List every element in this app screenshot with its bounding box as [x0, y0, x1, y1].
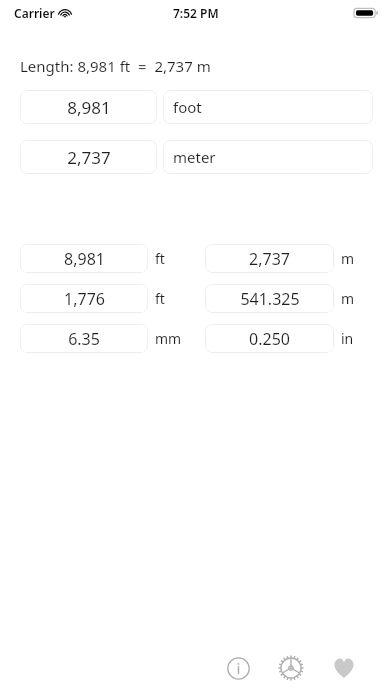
button[interactable]: Info	[216, 646, 260, 690]
staticText: 7:52 PM	[173, 5, 219, 21]
button[interactable]: Favorites	[322, 646, 366, 690]
button[interactable]: Settings	[269, 646, 313, 690]
staticText: m	[341, 289, 355, 308]
staticText: foot	[173, 97, 202, 117]
button[interactable]: foot	[163, 90, 373, 124]
staticText: 2,737	[67, 146, 111, 169]
staticText: 541.325	[240, 288, 300, 310]
button[interactable]: 6.35	[20, 324, 148, 353]
button[interactable]: meter	[163, 140, 373, 174]
staticText: in	[341, 329, 354, 348]
staticText: Length: 8,981 ft = 2,737 m	[20, 56, 211, 76]
button[interactable]: 8,981	[20, 244, 148, 273]
button[interactable]: 2,737	[20, 140, 157, 174]
staticText: 8,981	[67, 96, 111, 119]
button[interactable]: 1,776	[20, 284, 148, 313]
staticText: ft	[155, 289, 165, 308]
staticText: 6.35	[68, 328, 100, 350]
staticText: 0.250	[249, 328, 290, 350]
staticText: 1,776	[64, 288, 105, 310]
staticText: 8,981	[64, 248, 105, 270]
button[interactable]: 8,981	[20, 90, 157, 124]
button[interactable]: 2,737	[205, 244, 334, 273]
button[interactable]: 0.250	[205, 324, 334, 353]
staticText: 2,737	[249, 248, 290, 270]
staticText: Carrier	[14, 5, 55, 21]
staticText: mm	[155, 329, 182, 348]
staticText: meter	[173, 147, 216, 167]
staticText: m	[341, 249, 355, 268]
button[interactable]: 541.325	[205, 284, 334, 313]
staticText: ft	[155, 249, 165, 268]
